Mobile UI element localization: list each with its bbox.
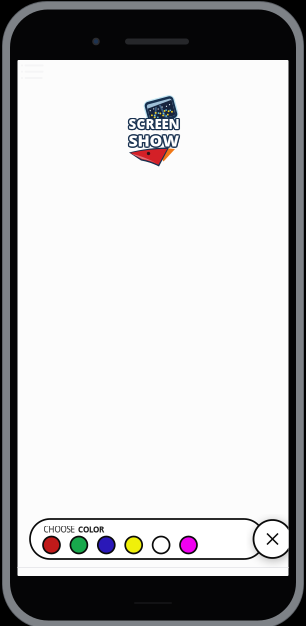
- button[interactable]: Red: [43, 536, 60, 553]
- staticText: SCREEN: [128, 115, 179, 133]
- staticText: SCREEN: [130, 115, 181, 133]
- staticText: COLOR: [78, 524, 104, 535]
- staticText: SHOW: [128, 131, 179, 152]
- button[interactable]: Yellow: [125, 536, 142, 553]
- staticText: CHOOSE: [43, 524, 74, 535]
- staticText: SHOW: [127, 129, 178, 150]
- staticText: SHOW: [127, 130, 178, 151]
- staticText: SHOW: [127, 131, 178, 152]
- staticText: SCREEN: [127, 114, 178, 132]
- staticText: SCREEN: [128, 114, 179, 131]
- button[interactable]: Green: [70, 536, 87, 553]
- staticText: SCREEN: [128, 116, 179, 134]
- staticText: SCREEN: [129, 114, 180, 132]
- staticText: SCREEN: [129, 116, 180, 134]
- button[interactable]: White: [153, 536, 170, 553]
- staticText: SCREEN: [127, 115, 178, 133]
- staticText: SHOW: [130, 130, 181, 151]
- staticText: SCREEN: [127, 116, 178, 134]
- button[interactable]: Magenta: [180, 536, 197, 553]
- staticText: SHOW: [129, 131, 180, 152]
- button[interactable]: Close: [253, 520, 291, 558]
- button[interactable]: Blue: [98, 536, 115, 553]
- staticText: SHOW: [128, 128, 179, 150]
- staticText: SHOW: [128, 130, 179, 151]
- staticText: SHOW: [129, 129, 180, 150]
